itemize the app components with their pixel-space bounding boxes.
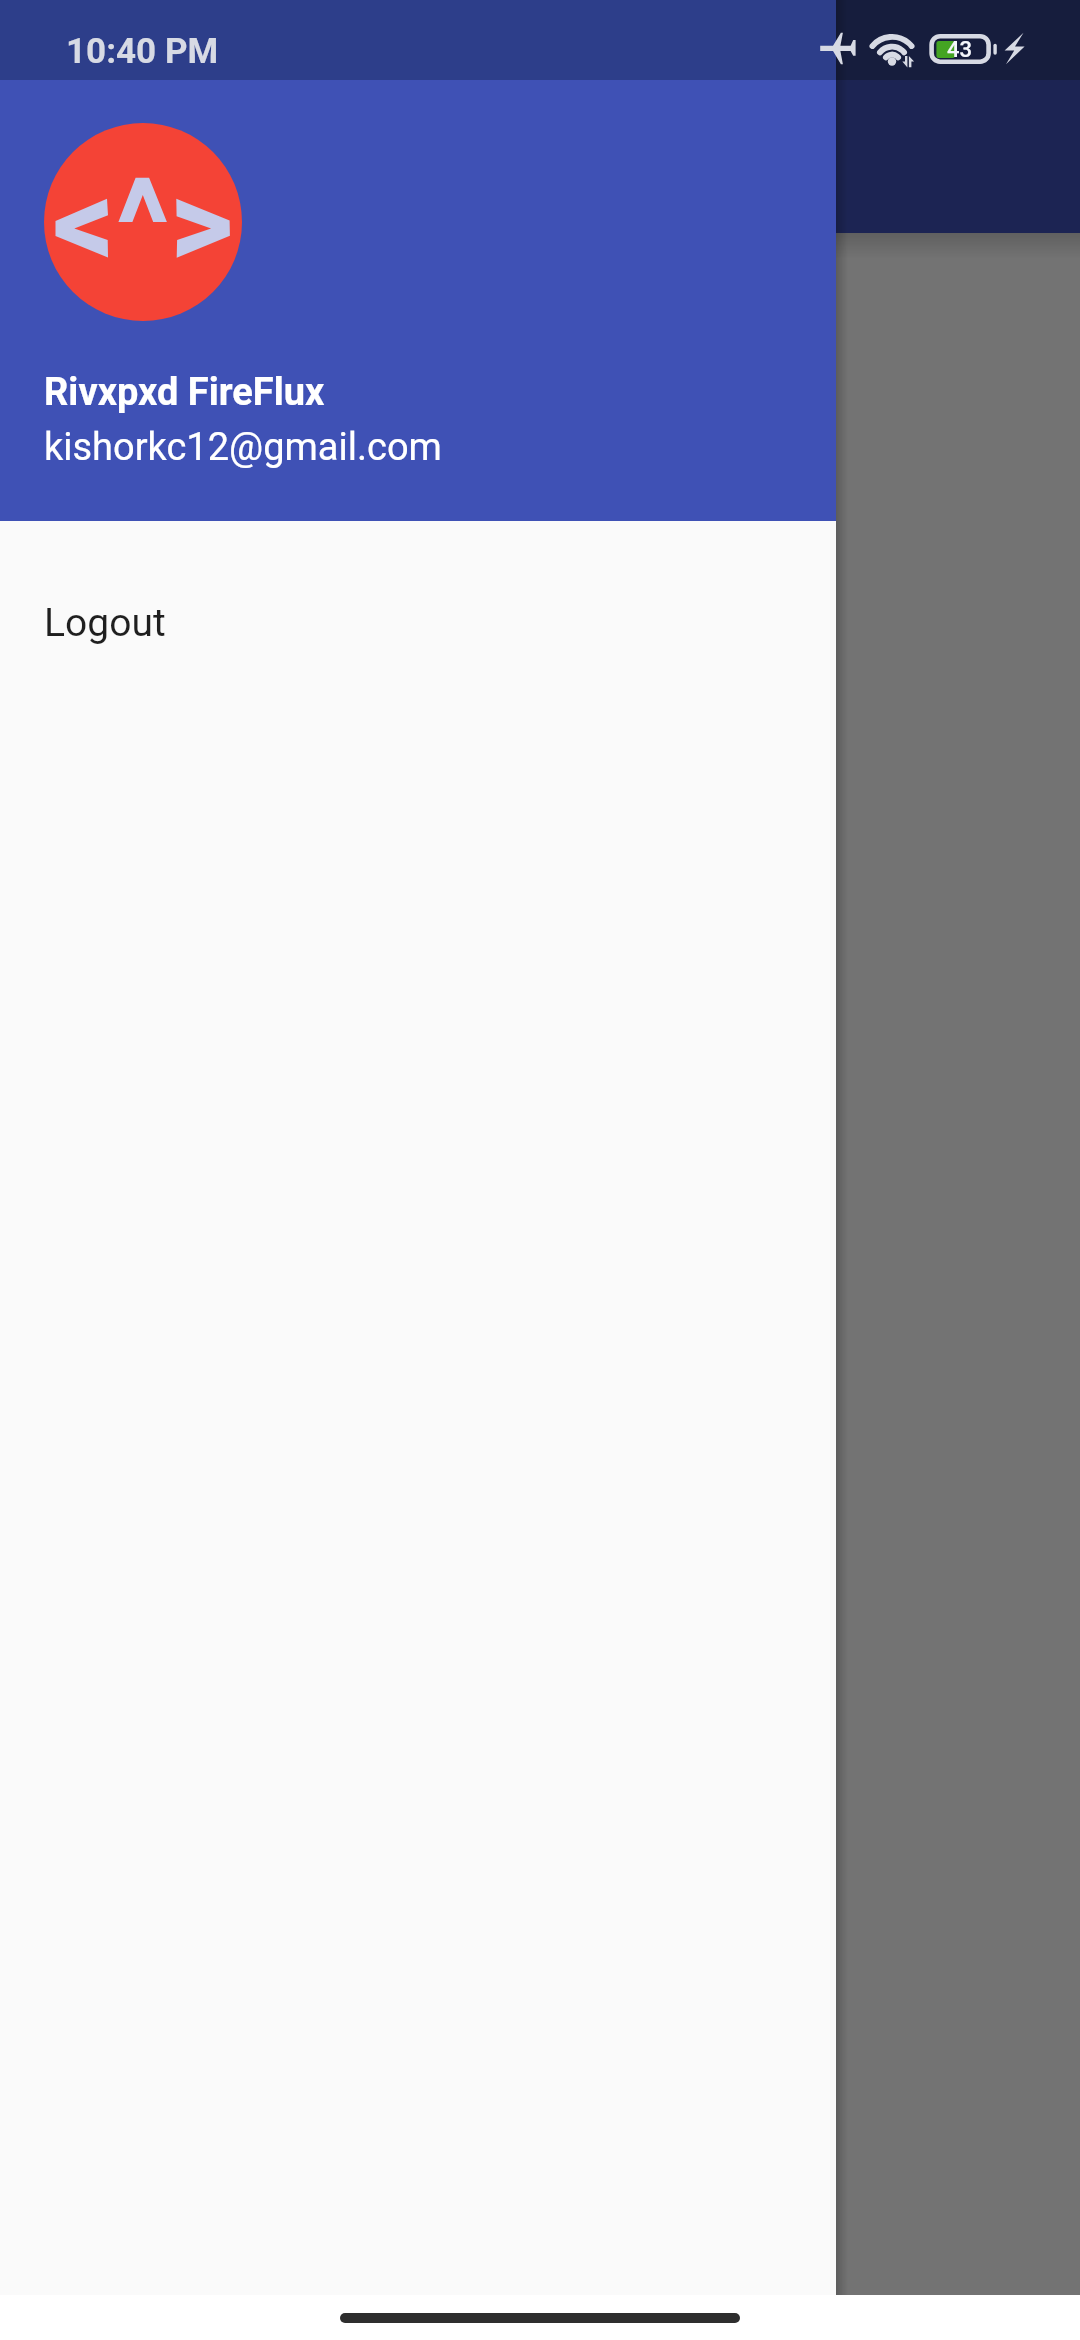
button[interactable]: Rivxpxd FireFlux [0,0,836,521]
button[interactable]: Close navigation drawer [836,0,1080,2295]
staticText: kishorkc12@gmail.com [44,425,442,470]
button[interactable]: Logout [0,521,836,725]
staticText: 43 [947,37,973,63]
staticText: Rivxpxd FireFlux [44,370,325,415]
staticText: 10:40 PM [66,31,219,72]
staticText: Logout [44,600,166,646]
